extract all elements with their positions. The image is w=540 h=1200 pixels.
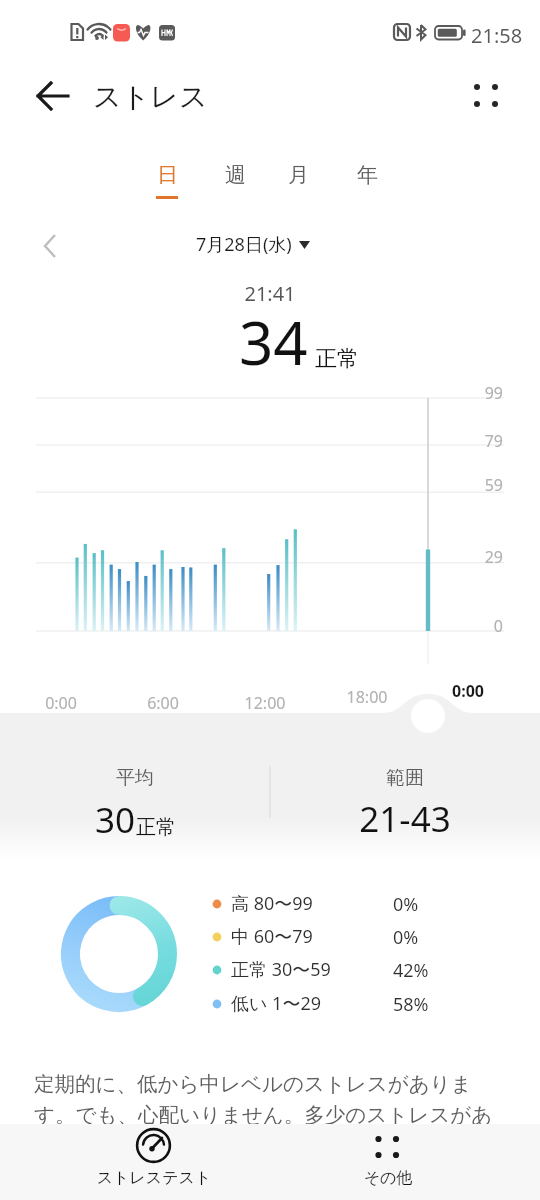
staticText: 0:00: [26, 692, 96, 714]
button[interactable]: その他: [270, 1124, 540, 1200]
staticText: 正常: [315, 345, 359, 373]
button[interactable]: 7月28日(水): [196, 232, 310, 257]
staticText: 59: [443, 474, 503, 496]
staticText: 範囲: [290, 766, 520, 790]
staticText: 定期的に、低から中レベルのストレスがありま す。でも、心配いりません。多少のスト…: [34, 1071, 493, 1128]
staticText: 日: [157, 162, 178, 188]
staticText: 29: [443, 546, 503, 568]
button[interactable]: 日: [137, 162, 197, 210]
staticText: 0%: [393, 892, 419, 917]
staticText: 58%: [393, 992, 429, 1017]
button[interactable]: ストレステスト: [0, 1124, 270, 1200]
staticText: 正常: [136, 815, 176, 840]
button[interactable]: 月: [268, 162, 328, 210]
staticText: 21-43: [290, 795, 520, 843]
staticText: 21:58: [471, 22, 523, 49]
staticText: ストレステスト: [34, 1168, 274, 1188]
staticText: 0:00: [433, 680, 503, 702]
button[interactable]: 週: [205, 162, 265, 210]
staticText: 79: [443, 430, 503, 452]
staticText: 正常 30〜59: [231, 957, 331, 982]
staticText: 7月28日(水): [196, 232, 292, 257]
staticText: 18:00: [332, 686, 402, 708]
staticText: 34: [239, 301, 308, 383]
staticText: 30: [95, 796, 136, 844]
staticText: 中 60〜79: [231, 924, 313, 949]
staticText: 月: [288, 162, 309, 188]
staticText: 6:00: [128, 692, 198, 714]
button[interactable]: 正常 30〜59: [212, 955, 462, 984]
button[interactable]: 高 80〜99: [212, 889, 462, 918]
staticText: ストレス: [93, 79, 208, 114]
staticText: 21:41: [0, 280, 540, 307]
staticText: 0%: [393, 925, 419, 950]
staticText: 高 80〜99: [231, 891, 313, 916]
staticText: 12:00: [230, 692, 300, 714]
staticText: 42%: [393, 958, 429, 983]
staticText: 週: [225, 162, 246, 188]
button[interactable]: More options: [464, 73, 510, 119]
staticText: 年: [357, 162, 378, 188]
staticText: 平均: [20, 766, 250, 790]
button[interactable]: Back: [26, 72, 74, 120]
staticText: 低い 1〜29: [231, 991, 321, 1016]
button[interactable]: 低い 1〜29: [212, 989, 462, 1018]
staticText: 99: [443, 382, 503, 404]
button[interactable]: 中 60〜79: [212, 922, 462, 951]
button[interactable]: Previous day: [30, 226, 70, 266]
staticText: その他: [270, 1168, 506, 1188]
button[interactable]: 年: [337, 162, 397, 210]
staticText: 0: [443, 615, 503, 637]
